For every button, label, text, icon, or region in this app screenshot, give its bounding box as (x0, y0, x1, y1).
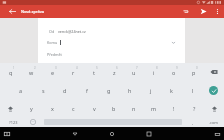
button[interactable]: Emoji (25, 117, 40, 127)
staticText: v (93, 105, 96, 112)
staticText: x (51, 105, 54, 112)
button[interactable]: 7 (124, 63, 144, 81)
button[interactable]: Od (38, 26, 185, 36)
button[interactable]: b (104, 99, 124, 117)
button[interactable]: f (76, 81, 98, 99)
staticText: 5 (96, 66, 98, 70)
staticText: 1 (13, 66, 15, 70)
staticText: 4 (76, 66, 78, 70)
staticText: a (19, 87, 23, 94)
staticText: 7 (136, 66, 138, 70)
staticText: l (192, 87, 194, 94)
staticText: . (192, 119, 194, 126)
button[interactable]: Home (107, 129, 117, 139)
button[interactable]: Notifications (3, 130, 11, 138)
staticText: f (86, 87, 88, 94)
staticText: 8 (156, 66, 158, 70)
button[interactable]: y (21, 99, 42, 117)
button[interactable]: n (124, 99, 144, 117)
staticText: j (150, 87, 152, 94)
other: Shift (204, 99, 224, 117)
staticText: o (172, 69, 176, 76)
staticText: .com (209, 120, 218, 125)
button[interactable]: Send (195, 5, 211, 18)
button[interactable]: d (54, 81, 76, 99)
other: Shift (0, 99, 21, 117)
staticText: u (132, 69, 136, 76)
staticText: p (192, 69, 196, 76)
button[interactable]: j (140, 81, 161, 99)
button[interactable]: l (182, 81, 203, 99)
staticText: ? (193, 105, 196, 112)
button[interactable]: More options (211, 5, 224, 18)
button[interactable]: m (144, 99, 164, 117)
staticText: 6 (116, 66, 118, 70)
button[interactable]: Shift (0, 99, 21, 117)
button[interactable]: Back (0, 5, 24, 18)
other: Next (203, 81, 224, 99)
button[interactable]: Komu (38, 37, 185, 47)
staticText: Komu (47, 40, 58, 45)
staticText: k (170, 87, 173, 94)
staticText: 0 (196, 66, 198, 70)
button[interactable]: Next (203, 81, 224, 99)
button[interactable]: Backspace (204, 63, 224, 81)
button[interactable]: ? (184, 99, 204, 117)
button[interactable]: g (98, 81, 119, 99)
staticText: n (132, 105, 136, 112)
button[interactable]: v (84, 99, 104, 117)
button[interactable]: a (10, 81, 32, 99)
staticText: t (93, 69, 95, 76)
staticText: ?123 (9, 120, 18, 125)
button[interactable]: 0 (184, 63, 204, 81)
button[interactable]: 5 (84, 63, 104, 81)
button[interactable]: 6 (104, 63, 124, 81)
staticText: venck@24net.cz (58, 29, 86, 34)
staticText: w (29, 69, 34, 76)
button[interactable]: 9 (164, 63, 184, 81)
staticText: c (72, 105, 75, 112)
button[interactable]: ! (164, 99, 184, 117)
button[interactable]: k (161, 81, 182, 99)
button[interactable]: s (32, 81, 54, 99)
button[interactable]: 4 (63, 63, 84, 81)
button[interactable]: Předmět (38, 49, 185, 59)
staticText: 3 (55, 66, 57, 70)
button[interactable]: 1 (0, 63, 21, 81)
staticText: s (42, 87, 45, 94)
staticText: b (112, 105, 116, 112)
button[interactable]: h (119, 81, 140, 99)
other: Backspace (204, 63, 224, 81)
staticText: i (153, 69, 155, 76)
staticText: m (151, 105, 157, 112)
staticText: d (63, 87, 67, 94)
button[interactable]: Hide keyboard (214, 131, 220, 137)
staticText: z (113, 69, 116, 76)
staticText: 2 (34, 66, 36, 70)
button[interactable]: c (63, 99, 84, 117)
button[interactable]: 3 (42, 63, 63, 81)
staticText: ! (173, 105, 175, 112)
staticText: r (72, 69, 75, 76)
button[interactable]: Attach file (177, 5, 195, 18)
button[interactable]: 8 (144, 63, 164, 81)
button[interactable]: Shift (204, 99, 224, 117)
button[interactable]: x (42, 99, 63, 117)
button[interactable]: Recent apps (144, 129, 154, 139)
button[interactable]: 2 (21, 63, 42, 81)
button[interactable]: Back (70, 129, 80, 139)
button[interactable]: .com (202, 117, 224, 127)
staticText: Od (49, 29, 55, 34)
button[interactable]: ?123 (0, 117, 26, 127)
button[interactable]: . (186, 117, 200, 127)
staticText: g (107, 87, 111, 94)
staticText: h (128, 87, 132, 94)
staticText: q (9, 69, 13, 76)
staticText: 9 (176, 66, 178, 70)
staticText: y (30, 105, 33, 112)
staticText: Nová zpráva (21, 9, 44, 14)
staticText: e (51, 69, 55, 76)
staticText: Předmět (47, 52, 62, 57)
